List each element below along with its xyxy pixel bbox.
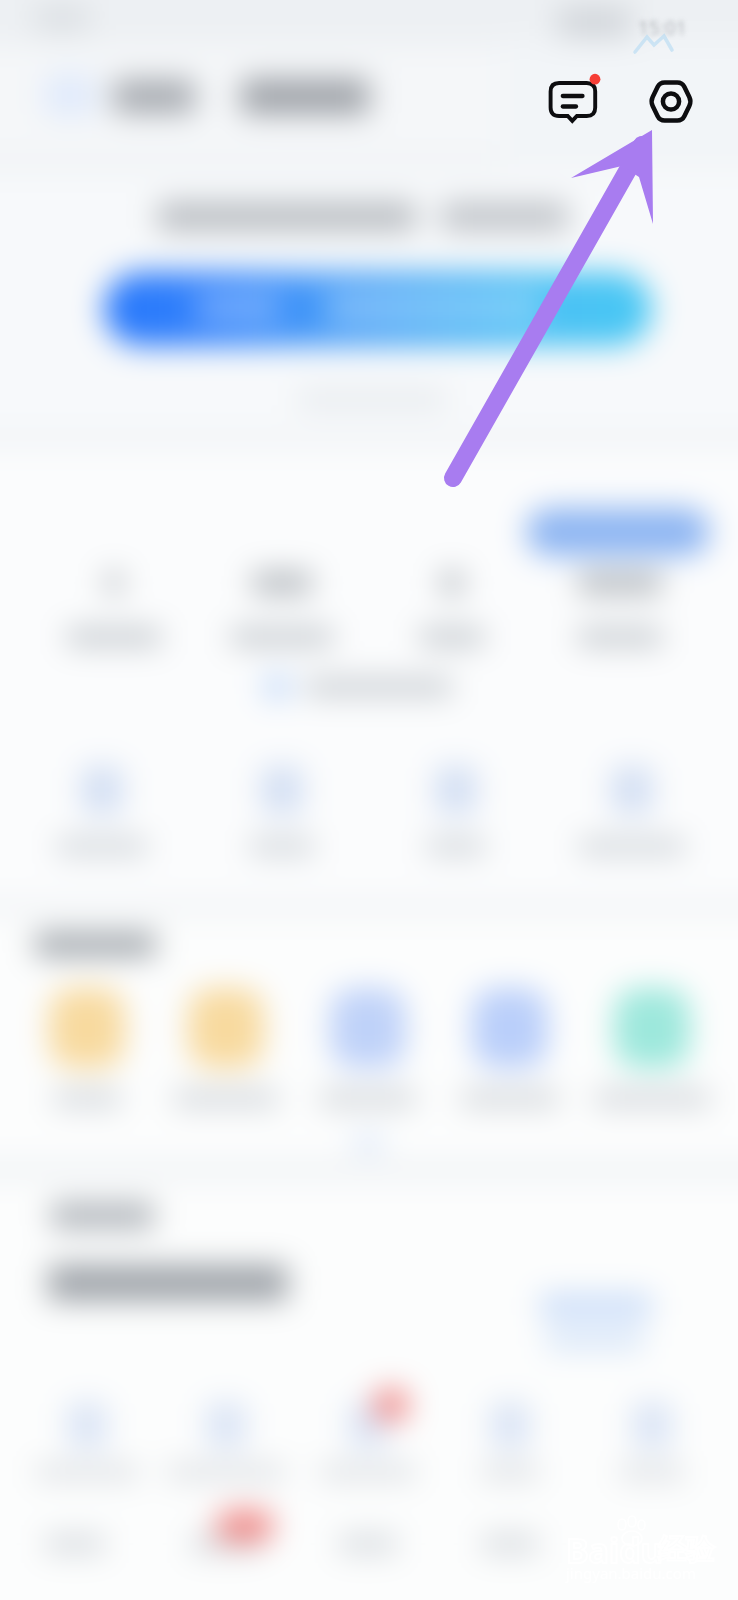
button[interactable]: Settings	[644, 76, 700, 128]
button[interactable]: Messages	[541, 72, 605, 132]
staticText: 15:01	[638, 15, 687, 41]
